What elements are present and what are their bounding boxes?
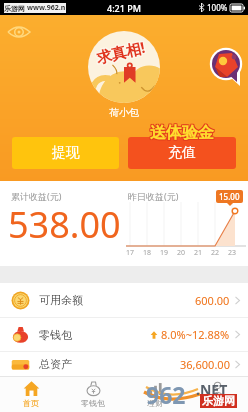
staticText: 求真相!	[94, 38, 147, 68]
staticText: 15.00	[219, 191, 240, 202]
staticText: 求真相!	[96, 37, 149, 68]
button[interactable]: 我的	[186, 376, 248, 412]
staticText: 求真相!	[95, 36, 149, 67]
button[interactable]: Activity announcement	[208, 46, 244, 88]
staticText: 4:21 PM	[107, 2, 141, 14]
staticText: 600.00	[195, 293, 230, 308]
staticText: 总资产	[39, 357, 72, 371]
button[interactable]: 充值	[128, 137, 236, 169]
staticText: 求真相!	[95, 38, 148, 68]
staticText: 求真相!	[93, 37, 147, 68]
staticText: 送体验金	[151, 123, 215, 143]
staticText: 送体验金	[149, 124, 213, 144]
staticText: 零钱包	[81, 398, 105, 408]
staticText: 100%	[207, 2, 228, 13]
button[interactable]: 总资产	[0, 352, 248, 376]
staticText: 可用余额	[39, 293, 83, 307]
button[interactable]: 首页	[0, 376, 62, 412]
staticText: 20	[177, 248, 186, 258]
button[interactable]: 理财	[124, 376, 186, 412]
staticText: 求真相!	[94, 37, 148, 67]
button[interactable]: 可用余额	[0, 283, 248, 317]
staticText: 送体验金	[149, 123, 213, 143]
button[interactable]: 求真相!	[88, 31, 160, 103]
staticText: 23	[228, 248, 237, 258]
staticText: 求真相!	[93, 36, 146, 67]
staticText: .NET	[196, 380, 228, 399]
staticText: 送体验金	[150, 124, 214, 144]
staticText: 538.00	[8, 200, 121, 249]
button[interactable]: Toggle balance visibility	[6, 23, 32, 41]
staticText: 累计收益(元)	[11, 190, 62, 202]
staticText: 36,600.00	[180, 357, 230, 372]
staticText: 22	[211, 248, 220, 258]
staticText: 荷小包	[109, 106, 139, 119]
staticText: 提现	[52, 144, 80, 162]
button[interactable]: 提现	[12, 137, 119, 169]
staticText: 18	[143, 248, 152, 258]
button[interactable]: 零钱包	[0, 318, 248, 351]
staticText: 17	[126, 248, 135, 258]
staticText: 19	[160, 248, 169, 258]
staticText: 零钱包	[39, 328, 72, 342]
staticText: 求真相!	[95, 35, 148, 66]
staticText: 21	[194, 248, 203, 258]
staticText: 理财	[147, 398, 163, 408]
staticText: 送体验金	[150, 123, 214, 143]
staticText: 乐游网	[4, 4, 25, 13]
staticText: 首页	[23, 398, 39, 408]
staticText: 送体验金	[151, 124, 215, 144]
staticText: www.962.net	[27, 3, 66, 13]
staticText: 乐游网	[202, 394, 235, 408]
staticText: 充值	[168, 144, 196, 162]
staticText: 求真相!	[94, 36, 147, 66]
staticText: 962	[146, 379, 186, 410]
staticText: 送体验金	[149, 122, 213, 142]
staticText: 我的	[209, 398, 225, 408]
staticText: 8.0%~12.88%	[161, 327, 230, 342]
button[interactable]: 零钱包	[62, 376, 124, 412]
staticText: 昨日收益(元)	[128, 190, 179, 202]
staticText: 送体验金	[150, 122, 214, 142]
staticText: 送体验金	[151, 122, 215, 142]
